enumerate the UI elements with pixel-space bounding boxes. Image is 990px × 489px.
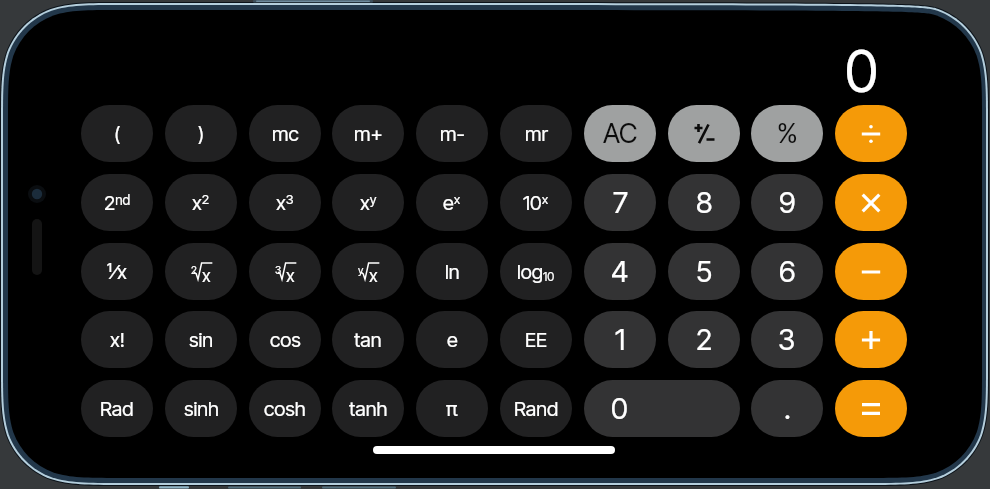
staticText: ): [198, 122, 205, 146]
staticText: 0: [845, 37, 878, 103]
staticText: mc: [272, 122, 299, 146]
staticText: 10x: [523, 191, 549, 215]
button[interactable]: 2nd: [81, 174, 153, 231]
staticText: sin: [189, 328, 214, 352]
button[interactable]: m-: [416, 105, 488, 162]
button[interactable]: Cube root: [249, 243, 321, 300]
staticText: Rand: [514, 397, 559, 421]
staticText: 3: [778, 322, 796, 357]
button[interactable]: Rand: [500, 380, 572, 437]
staticText: tan: [354, 328, 382, 352]
staticText: x: [202, 265, 211, 284]
button[interactable]: ex: [416, 174, 488, 231]
button[interactable]: Divide: [835, 105, 907, 162]
button[interactable]: sinh: [165, 380, 237, 437]
staticText: 2nd: [104, 191, 131, 215]
staticText: 6: [779, 254, 796, 289]
button[interactable]: 3: [751, 311, 823, 368]
staticText: 3: [275, 264, 282, 277]
staticText: %: [777, 117, 798, 150]
button[interactable]: ln: [416, 243, 488, 300]
staticText: y: [358, 264, 364, 277]
staticText: 2: [696, 322, 713, 357]
button[interactable]: 5: [668, 243, 740, 300]
button[interactable]: Subtract: [835, 243, 907, 300]
staticText: x: [369, 265, 378, 284]
button[interactable]: x3: [249, 174, 321, 231]
button[interactable]: ¹⁄x: [81, 243, 153, 300]
button[interactable]: %: [751, 105, 823, 162]
staticText: 9: [779, 185, 796, 220]
button[interactable]: 4: [584, 243, 656, 300]
button[interactable]: Multiply: [835, 174, 907, 231]
staticText: π: [446, 397, 458, 421]
staticText: ¹⁄x: [107, 260, 127, 284]
button[interactable]: m+: [332, 105, 404, 162]
button[interactable]: (: [81, 105, 153, 162]
button[interactable]: Equals: [835, 380, 907, 437]
button[interactable]: 8: [668, 174, 740, 231]
staticText: 1: [615, 322, 626, 357]
button[interactable]: mc: [249, 105, 321, 162]
staticText: mr: [525, 122, 548, 146]
staticText: m+: [354, 122, 383, 146]
button[interactable]: 10x: [500, 174, 572, 231]
staticText: cos: [270, 328, 301, 352]
button[interactable]: tan: [332, 311, 404, 368]
button[interactable]: Nth root: [332, 243, 404, 300]
button[interactable]: e: [416, 311, 488, 368]
staticText: 0: [611, 391, 628, 426]
button[interactable]: EE: [500, 311, 572, 368]
staticText: cosh: [264, 397, 306, 421]
button[interactable]: tanh: [332, 380, 404, 437]
button[interactable]: Plus minus: [668, 105, 740, 162]
staticText: (: [114, 122, 121, 146]
staticText: x2: [192, 191, 210, 215]
button[interactable]: mr: [500, 105, 572, 162]
button[interactable]: x!: [81, 311, 153, 368]
button[interactable]: Rad: [81, 380, 153, 437]
staticText: ln: [445, 260, 460, 284]
button[interactable]: .: [751, 380, 823, 437]
button[interactable]: π: [416, 380, 488, 437]
staticText: log10: [517, 260, 555, 284]
staticText: Rad: [100, 397, 134, 421]
button[interactable]: 9: [751, 174, 823, 231]
button[interactable]: Add: [835, 311, 907, 368]
staticText: EE: [525, 328, 548, 352]
button[interactable]: sin: [165, 311, 237, 368]
staticText: m-: [440, 122, 465, 146]
button[interactable]: 1: [584, 311, 656, 368]
staticText: 2: [191, 264, 197, 277]
staticText: e: [447, 328, 458, 352]
staticText: x3: [276, 191, 294, 215]
button[interactable]: log10: [500, 243, 572, 300]
button[interactable]: 2: [668, 311, 740, 368]
staticText: x!: [110, 328, 125, 352]
staticText: 5: [696, 254, 713, 289]
button[interactable]: 6: [751, 243, 823, 300]
staticText: ex: [443, 191, 461, 215]
staticText: AC: [603, 117, 638, 150]
button[interactable]: xy: [332, 174, 404, 231]
button[interactable]: cos: [249, 311, 321, 368]
button[interactable]: ): [165, 105, 237, 162]
staticText: 8: [696, 185, 713, 220]
staticText: .: [784, 391, 791, 426]
staticText: x: [286, 265, 295, 284]
button[interactable]: x2: [165, 174, 237, 231]
staticText: 4: [611, 254, 629, 289]
staticText: 7: [613, 185, 628, 220]
staticText: xy: [360, 191, 377, 215]
button[interactable]: Square root: [165, 243, 237, 300]
button[interactable]: cosh: [249, 380, 321, 437]
button[interactable]: AC: [584, 105, 656, 162]
staticText: sinh: [184, 397, 219, 421]
staticText: tanh: [349, 397, 388, 421]
button[interactable]: 0: [584, 380, 740, 437]
button[interactable]: 7: [584, 174, 656, 231]
